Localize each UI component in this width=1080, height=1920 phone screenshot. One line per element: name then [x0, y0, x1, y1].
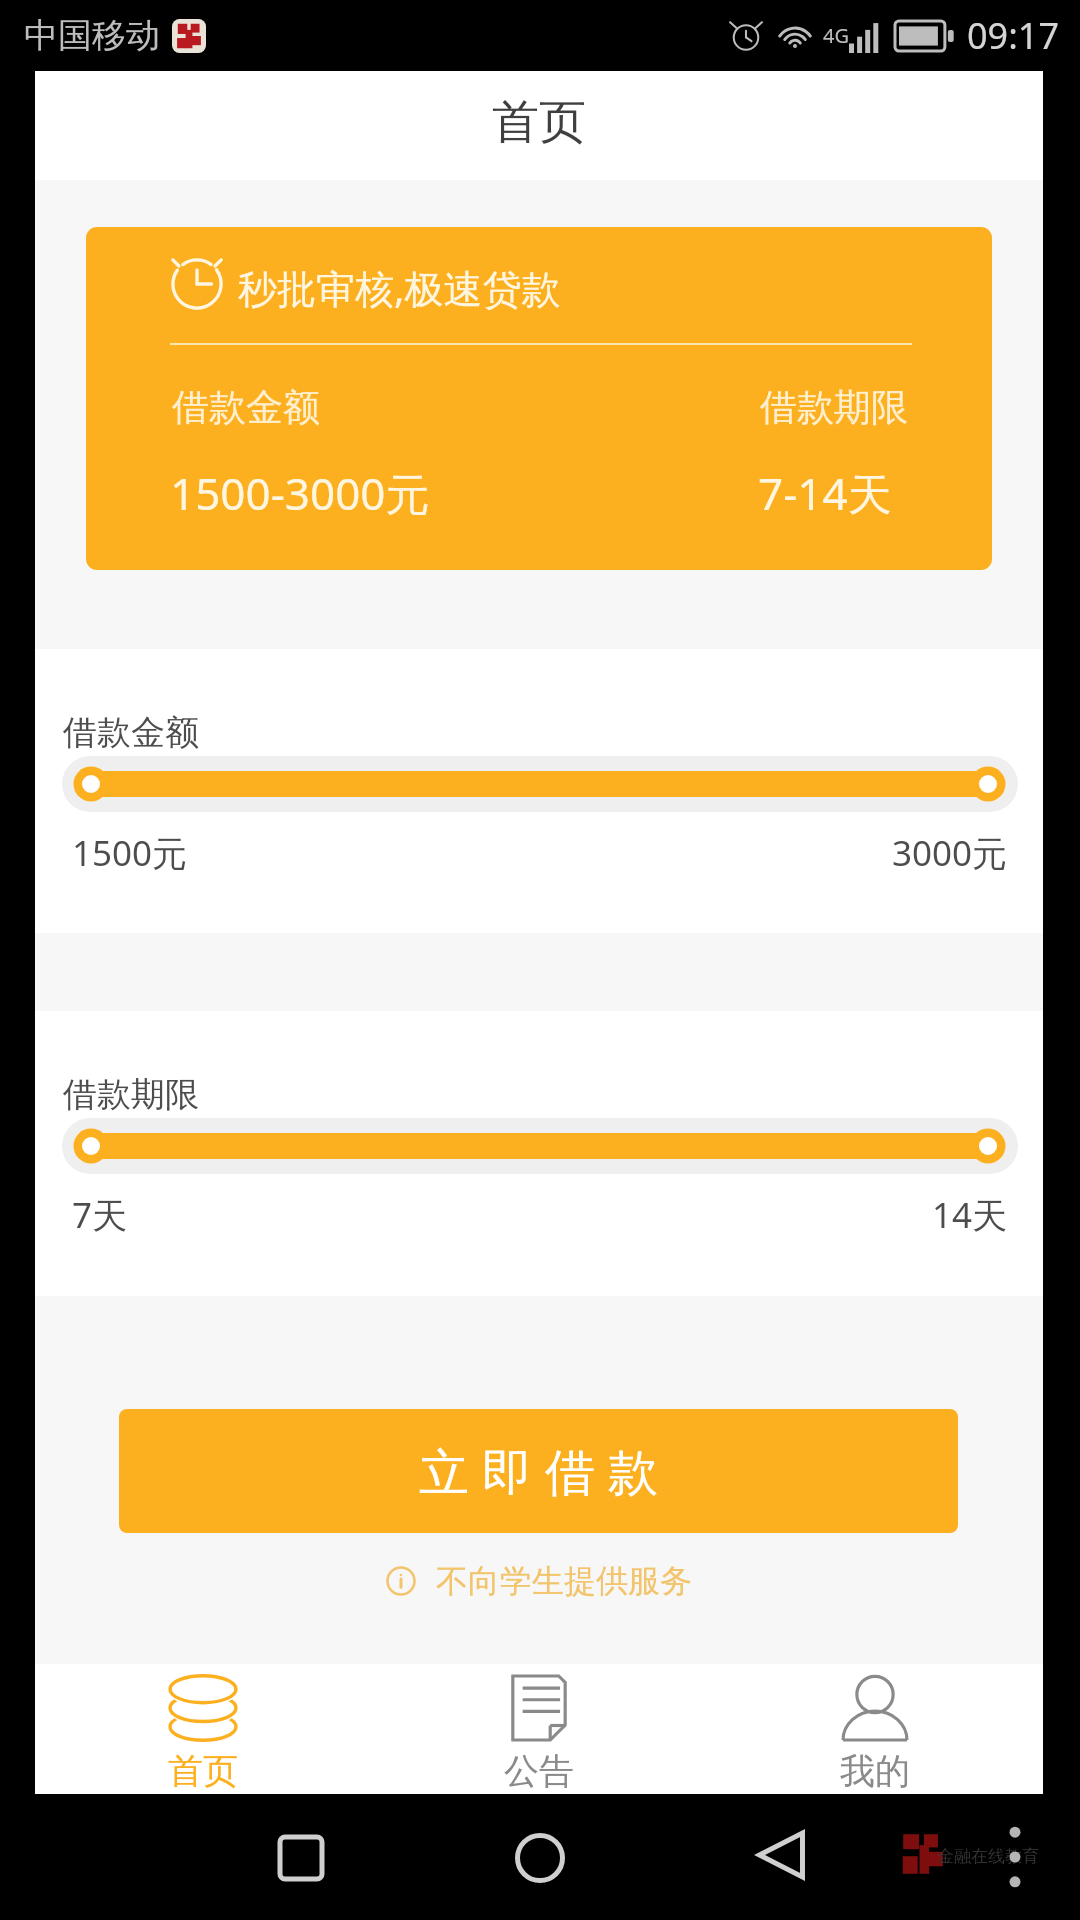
staticText: 金融在线教育	[937, 1846, 1039, 1867]
staticText: 不向学生提供服务	[436, 1561, 692, 1601]
other: Home	[169, 1675, 237, 1741]
button[interactable]: Back	[756, 1830, 806, 1880]
staticText: 09:17	[967, 11, 1060, 60]
staticText: 中国移动	[24, 14, 160, 57]
button[interactable]: Profile	[707, 1664, 1043, 1794]
button[interactable]	[62, 756, 1018, 812]
button[interactable]: 立 即 借 款	[119, 1409, 958, 1533]
staticText: 1500-3000元	[170, 463, 430, 523]
button[interactable]: Fast approval	[86, 227, 992, 570]
staticText: 公告	[504, 1749, 574, 1793]
staticText: 立 即 借 款	[419, 1437, 658, 1505]
button[interactable]	[62, 1118, 1018, 1174]
button[interactable]: Notices	[371, 1664, 707, 1794]
button[interactable]: Home	[515, 1833, 565, 1883]
staticText: 我的	[840, 1749, 910, 1793]
button[interactable]: 不向学生提供服务	[35, 1559, 1043, 1603]
staticText: 借款金额	[172, 384, 320, 431]
staticText: 14天	[932, 1191, 1008, 1239]
button[interactable]: Recents	[278, 1835, 324, 1881]
staticText: 借款期限	[760, 384, 908, 431]
other: Notices	[505, 1675, 573, 1741]
other: Fast approval	[169, 256, 225, 312]
staticText: 秒批审核,极速贷款	[238, 261, 561, 314]
staticText: 7-14天	[758, 463, 892, 523]
staticText: 首页	[168, 1749, 238, 1793]
staticText: 借款期限	[63, 1073, 199, 1116]
button[interactable]: Home	[35, 1664, 371, 1794]
staticText: 7天	[72, 1191, 128, 1239]
other: Profile	[841, 1675, 909, 1741]
staticText: 4G	[823, 22, 849, 49]
staticText: 1500元	[72, 829, 188, 877]
staticText: 借款金额	[63, 711, 199, 754]
staticText: 首页	[492, 93, 586, 152]
staticText: 3000元	[892, 829, 1008, 877]
